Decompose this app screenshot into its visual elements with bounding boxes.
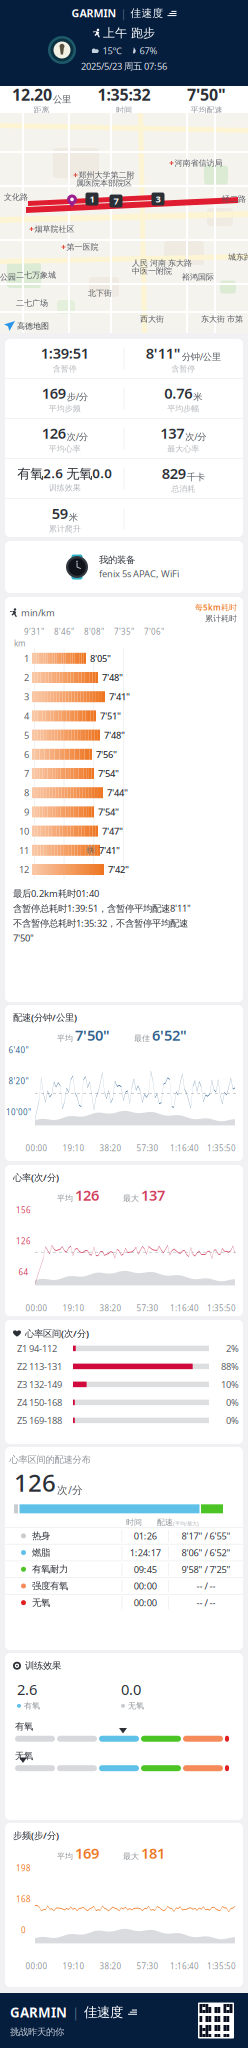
staticText: 1:39:51	[41, 343, 89, 363]
staticText: 7'44"	[107, 786, 128, 799]
staticText: 含暂停	[53, 364, 77, 374]
staticText: 平均步幅	[167, 404, 199, 413]
staticText: 步频(步/分)	[13, 1829, 59, 1841]
staticText: 8'11"	[146, 343, 181, 363]
staticText: 1:35:50	[207, 1303, 236, 1313]
staticText: 无氧	[128, 1701, 144, 1711]
staticText: 公里	[53, 94, 71, 105]
staticText: 最大	[123, 1851, 139, 1861]
staticText: 最大心率	[167, 444, 199, 454]
staticText: 训练效果	[25, 1660, 61, 1671]
staticText: 126	[75, 1185, 99, 1205]
staticText: 经二路	[222, 194, 246, 204]
staticText: 1	[89, 193, 94, 205]
staticText: 00:00	[134, 1580, 157, 1592]
staticText: fenix 5s APAC, WiFi	[99, 567, 179, 580]
staticText: 有氧2.6 无氧0.0	[17, 464, 112, 482]
staticText: 9'31"	[24, 626, 44, 637]
staticText: 1:35:50	[207, 1143, 236, 1153]
staticText: 累计耗时	[205, 614, 237, 623]
staticText: 心率区间(次/分)	[25, 1327, 89, 1339]
staticText: 156	[16, 1205, 31, 1215]
staticText: 7'54"	[98, 767, 119, 780]
staticText: 1:16:40	[170, 1961, 199, 1971]
staticText: 829	[162, 463, 186, 483]
staticText: 平均心率	[49, 444, 81, 454]
staticText: 燃脂	[32, 1547, 50, 1558]
staticText: 12	[19, 863, 29, 876]
staticText: 6'40"	[8, 1045, 28, 1055]
staticText: 2	[24, 671, 29, 684]
staticText: 9'58" / 7'25"	[181, 1563, 230, 1575]
staticText: 6'52"	[152, 1025, 187, 1045]
staticText: 7'41"	[109, 690, 130, 703]
staticText: 热身	[32, 1530, 50, 1542]
staticText: 次/分	[57, 1483, 83, 1497]
staticText: GARMIN	[10, 2003, 67, 2021]
staticText: 训练效果	[49, 483, 81, 493]
staticText: 8'05"	[90, 652, 111, 664]
staticText: 距离	[33, 105, 49, 115]
staticText: 我的装备	[99, 554, 135, 566]
staticText: 198	[16, 1863, 31, 1873]
staticText: 6	[24, 748, 29, 760]
staticText: Z2 113-131	[17, 1360, 62, 1373]
staticText: |	[120, 6, 126, 20]
staticText: 169	[75, 1843, 99, 1863]
staticText: 7'47"	[102, 825, 123, 837]
staticText: 00:00	[25, 1143, 47, 1153]
staticText: 佳速度	[130, 6, 163, 20]
staticText: 二七万象城	[16, 270, 56, 280]
staticText: 57:30	[136, 1143, 158, 1153]
staticText: min/km	[21, 606, 55, 619]
staticText: 3	[24, 690, 29, 703]
staticText: 57:30	[136, 1303, 158, 1313]
staticText: 8	[24, 786, 29, 799]
staticText: 中医一附院	[132, 266, 172, 276]
staticText: 10'00"	[6, 1107, 31, 1117]
staticText: 0	[21, 1925, 26, 1935]
staticText: 北下街	[88, 288, 112, 298]
staticText: 00:00	[25, 1961, 47, 1971]
staticText: 10	[19, 825, 29, 837]
staticText: 佳速度	[84, 2004, 123, 2020]
staticText: 快	[87, 846, 94, 854]
staticText: 4	[24, 710, 29, 722]
staticText: 城东路	[228, 252, 248, 262]
staticText: 烟草院社区	[34, 224, 74, 234]
staticText: 最后0.2km耗时01:40	[13, 887, 99, 899]
staticText: 2025/5/23 周五 07:56	[81, 60, 167, 72]
staticText: 裕鸿国际	[182, 272, 214, 282]
staticText: 平均步频	[49, 404, 81, 413]
staticText: 时间	[126, 1517, 142, 1527]
staticText: Z1 94-112	[17, 1342, 57, 1355]
staticText: 总消耗	[171, 484, 195, 494]
staticText: 0.76	[164, 383, 192, 403]
staticText: 米	[193, 391, 202, 403]
staticText: Z5 169-188	[17, 1414, 62, 1427]
staticText: |	[72, 2003, 79, 2021]
staticText: 累计爬升	[49, 524, 81, 534]
staticText: 00:00	[25, 1303, 47, 1313]
staticText: km	[14, 638, 25, 649]
button[interactable]: 我的装备	[5, 541, 243, 593]
staticText: 无氧	[15, 1750, 33, 1762]
staticText: 59	[52, 503, 68, 523]
staticText: 次/分	[67, 430, 88, 443]
staticText: 步/分	[67, 390, 88, 403]
staticText: 2.6	[17, 1679, 37, 1699]
staticText: 1:16:40	[170, 1303, 199, 1313]
staticText: 137	[141, 1185, 165, 1205]
staticText: 1:16:40	[170, 1143, 199, 1153]
staticText: 最大	[123, 1193, 139, 1203]
staticText: 平均	[57, 1193, 73, 1203]
staticText: 1:35:32	[97, 84, 150, 105]
staticText: GARMIN	[71, 6, 116, 20]
staticText: 配速(分钟/公里)	[13, 1011, 77, 1023]
staticText: 7'42"	[108, 863, 129, 876]
staticText: 千卡	[187, 471, 205, 483]
staticText: 126	[14, 1466, 56, 1498]
staticText: 7'06"	[144, 626, 164, 637]
staticText: 8'08"	[84, 626, 104, 637]
staticText: 有氧	[24, 1701, 40, 1711]
